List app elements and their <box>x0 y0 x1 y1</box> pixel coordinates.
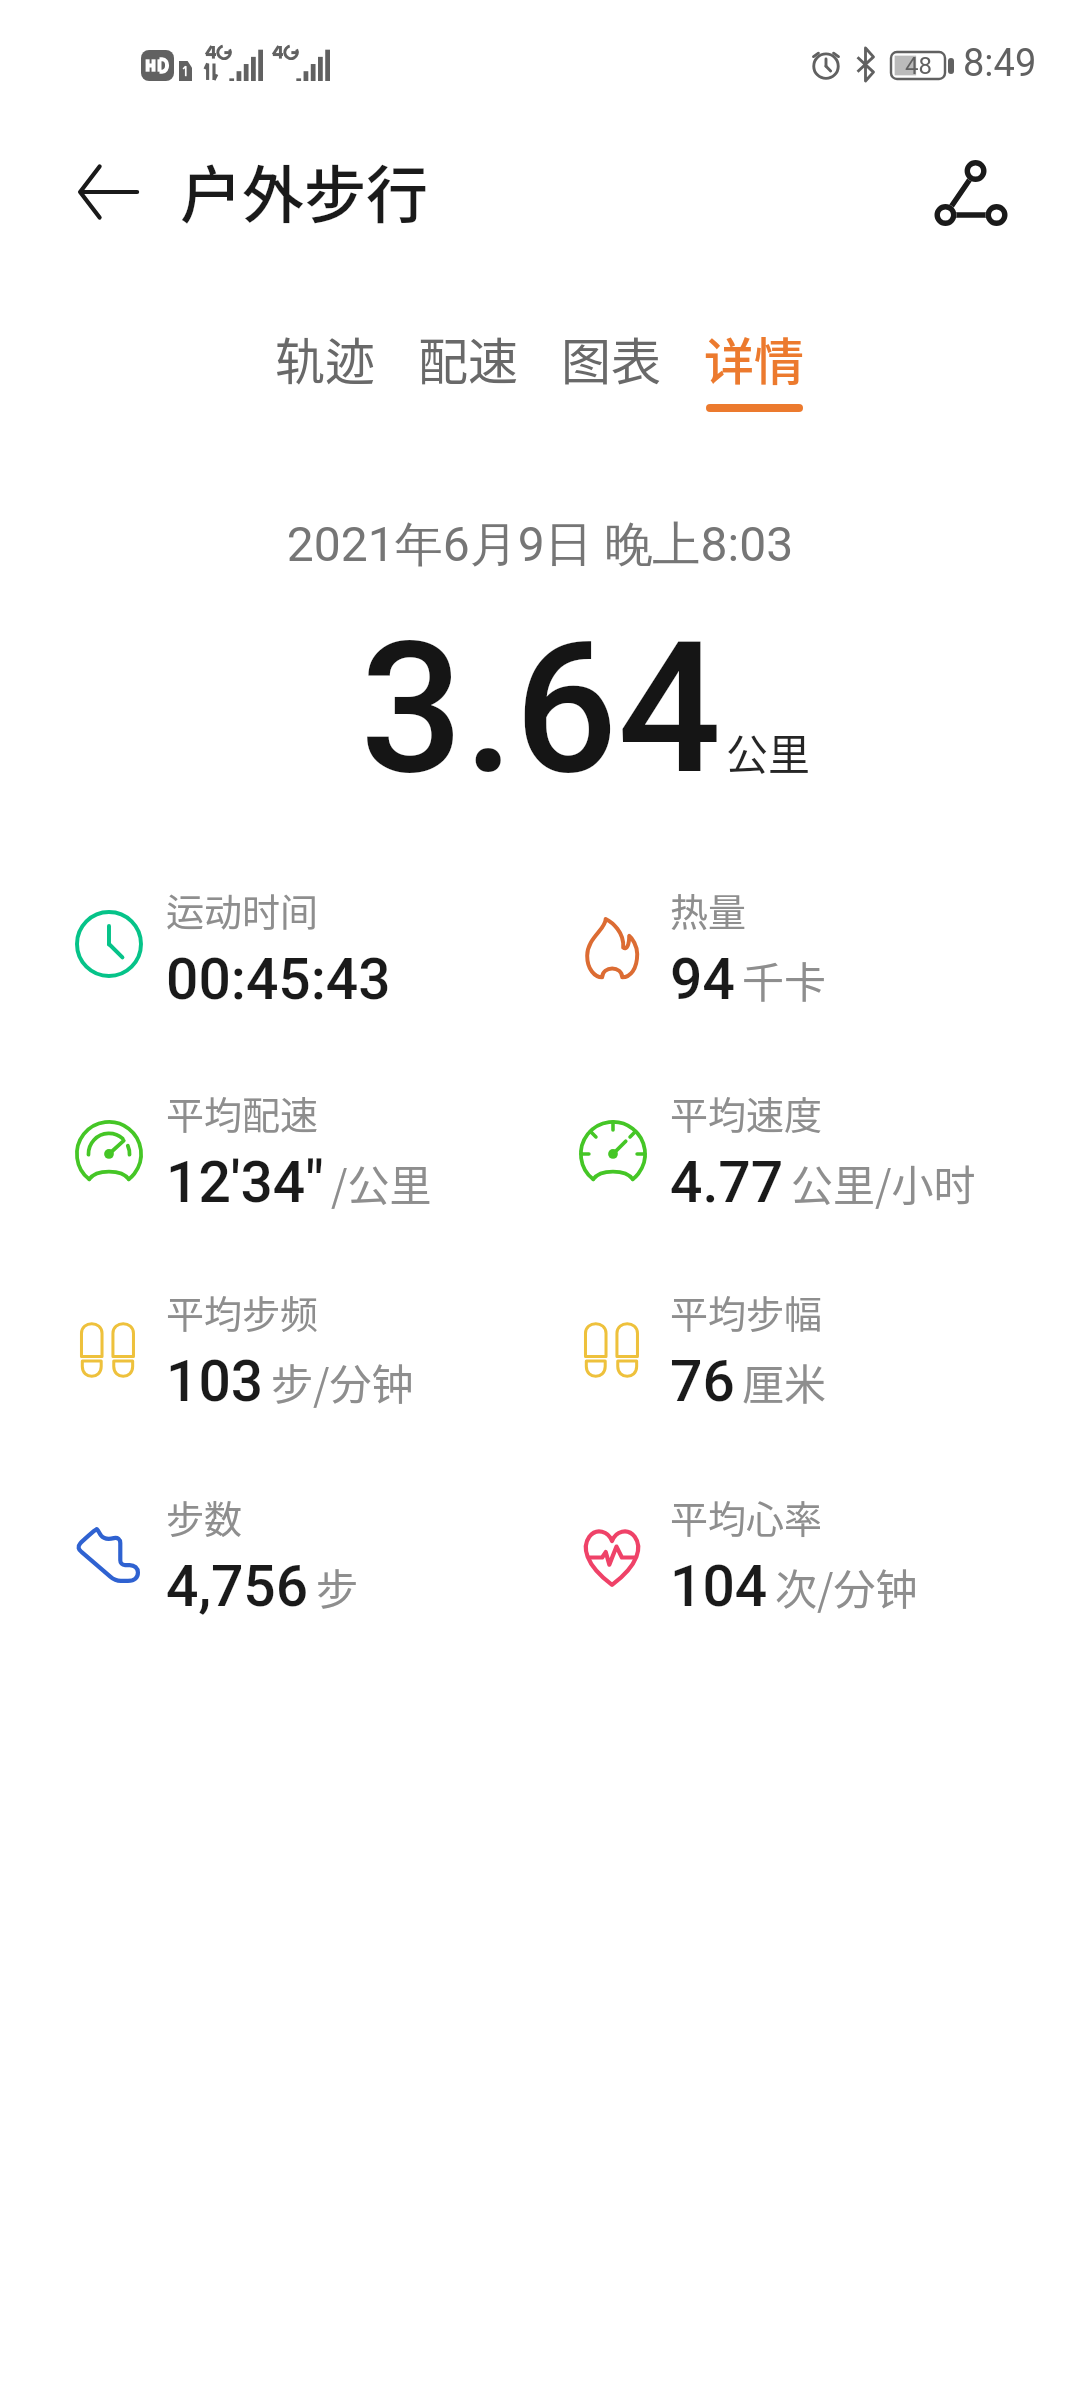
button[interactable]: Share <box>916 138 1026 248</box>
staticText: 热量 <box>670 882 747 937</box>
staticText: 平均步幅 <box>670 1284 823 1339</box>
staticText: 平均心率 <box>670 1489 823 1544</box>
button[interactable]: Back <box>56 140 160 244</box>
staticText: 103 <box>166 1348 264 1414</box>
staticText: 48 <box>905 52 932 79</box>
staticText: 详情 <box>704 322 804 394</box>
button[interactable]: 步数 <box>74 1486 544 1616</box>
staticText: /公里 <box>331 1152 432 1213</box>
button[interactable]: 运动时间 <box>74 879 544 1009</box>
staticText: 104 <box>670 1553 768 1619</box>
staticText: 配速 <box>418 322 518 394</box>
staticText: 公里 <box>726 721 811 782</box>
staticText: 平均速度 <box>670 1085 823 1140</box>
staticText: 4,756 <box>166 1553 309 1619</box>
staticText: 图表 <box>561 322 661 394</box>
staticText: 次/分钟 <box>775 1556 918 1617</box>
staticText: 4.77 <box>670 1149 784 1215</box>
staticText: 轨迹 <box>275 322 375 394</box>
staticText: 94 <box>670 946 735 1012</box>
staticText: 公里/小时 <box>791 1152 976 1213</box>
staticText: 千卡 <box>742 949 827 1010</box>
staticText: 3.64 <box>360 602 722 815</box>
button[interactable]: 配速 <box>397 322 539 426</box>
staticText: 00:45:43 <box>166 946 391 1012</box>
button[interactable]: 详情 <box>683 322 825 426</box>
button[interactable]: 平均速度 <box>578 1082 1048 1212</box>
button[interactable]: 平均步幅 <box>578 1281 1048 1411</box>
button[interactable]: 平均步频 <box>74 1281 544 1411</box>
staticText: 步数 <box>166 1489 243 1544</box>
button[interactable]: 热量 <box>578 879 1048 1009</box>
staticText: 2021年6月9日 晚上8:03 <box>0 515 1080 575</box>
staticText: 运动时间 <box>166 882 319 937</box>
staticText: 76 <box>670 1348 735 1414</box>
button[interactable]: 平均配速 <box>74 1082 544 1212</box>
staticText: 平均步频 <box>166 1284 319 1339</box>
staticText: 步/分钟 <box>271 1351 414 1412</box>
staticText: 厘米 <box>742 1351 827 1412</box>
staticText: 户外步行 <box>180 146 429 236</box>
button[interactable]: 图表 <box>540 322 682 426</box>
staticText: 平均配速 <box>166 1085 319 1140</box>
staticText: 步 <box>316 1556 359 1617</box>
button[interactable]: 平均心率 <box>578 1486 1048 1616</box>
staticText: 8:49 <box>963 41 1037 86</box>
button[interactable]: 轨迹 <box>254 322 396 426</box>
staticText: 12'34" <box>166 1149 324 1215</box>
